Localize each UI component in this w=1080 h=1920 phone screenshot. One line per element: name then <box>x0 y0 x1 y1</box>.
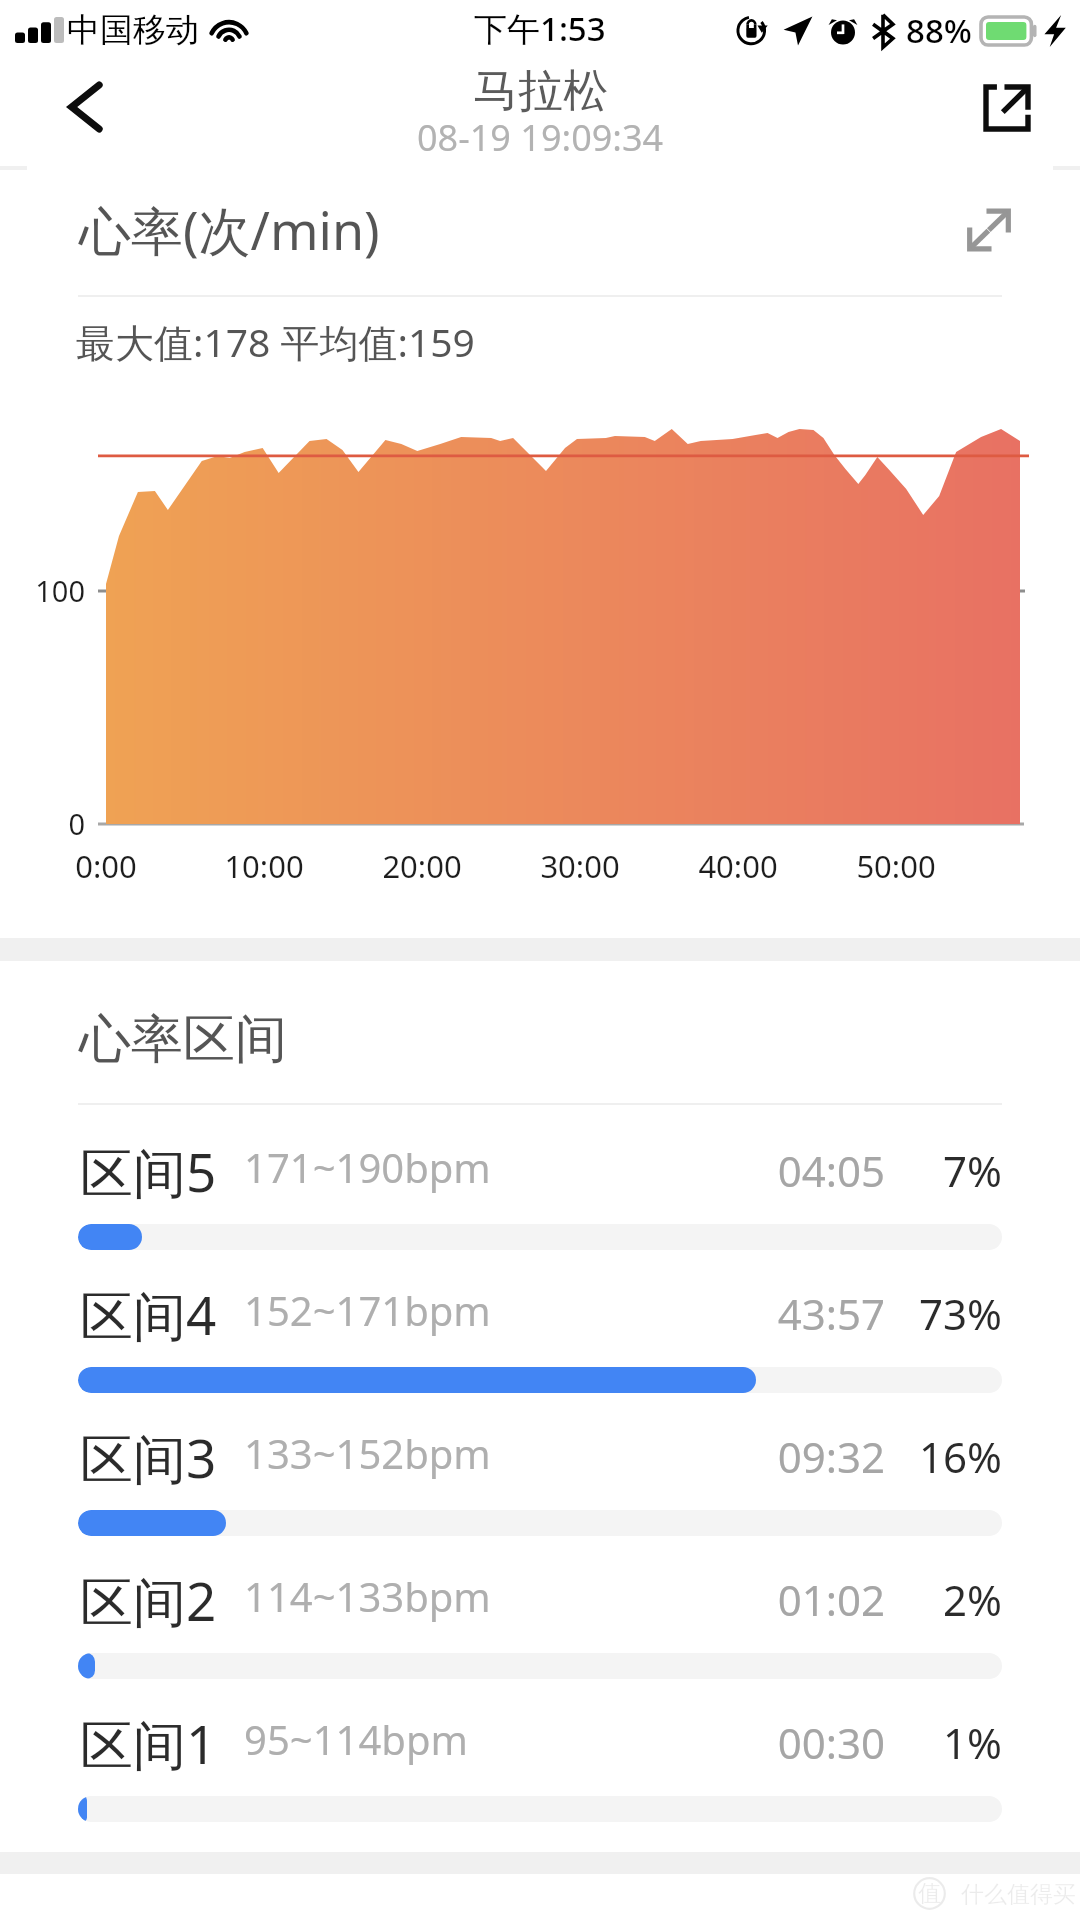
staticText: 0 <box>2 804 85 843</box>
button[interactable]: Back <box>0 60 150 160</box>
staticText: 下午1:53 <box>474 6 606 51</box>
staticText: 95~114bpm <box>244 1712 468 1766</box>
staticText: 区间2 <box>80 1564 217 1636</box>
staticText: 区间1 <box>80 1707 217 1779</box>
staticText: 什么值得买 <box>961 1880 1076 1909</box>
button[interactable]: 区间2 <box>0 1550 1080 1693</box>
staticText: 中国移动 <box>67 9 199 51</box>
staticText: 30:00 <box>510 845 650 887</box>
staticText: 0:00 <box>36 845 176 887</box>
staticText: 01:02 <box>700 1571 885 1628</box>
staticText: 2% <box>885 1571 1002 1628</box>
staticText: 16% <box>885 1428 1002 1485</box>
button[interactable]: Share <box>952 60 1064 160</box>
staticText: 10:00 <box>194 845 334 887</box>
staticText: 1% <box>885 1714 1002 1771</box>
staticText: 133~152bpm <box>244 1426 491 1480</box>
staticText: 114~133bpm <box>244 1569 491 1623</box>
staticText: 00:30 <box>700 1714 885 1771</box>
staticText: 最大值:178 平均值:159 <box>76 315 475 368</box>
staticText: 区间3 <box>80 1421 217 1493</box>
staticText: 152~171bpm <box>244 1283 491 1337</box>
staticText: 100 <box>2 571 85 610</box>
staticText: 50:00 <box>826 845 966 887</box>
button[interactable]: 区间4 <box>0 1264 1080 1407</box>
staticText: 心率区间 <box>79 1007 287 1073</box>
staticText: 值 <box>918 1879 941 1908</box>
staticText: 20:00 <box>352 845 492 887</box>
staticText: 7% <box>885 1142 1002 1199</box>
staticText: 171~190bpm <box>244 1140 491 1194</box>
staticText: 40:00 <box>668 845 808 887</box>
button[interactable]: 区间5 <box>0 1121 1080 1264</box>
staticText: 04:05 <box>700 1142 885 1199</box>
staticText: 73% <box>885 1285 1002 1342</box>
button[interactable]: 区间1 <box>0 1693 1080 1836</box>
button[interactable]: 区间3 <box>0 1407 1080 1550</box>
staticText: 区间4 <box>80 1278 217 1350</box>
staticText: 心率(次/min) <box>79 194 380 265</box>
staticText: 马拉松 <box>473 63 608 120</box>
staticText: 08-19 19:09:34 <box>417 113 664 162</box>
staticText: 88% <box>906 8 972 53</box>
button[interactable]: Expand chart <box>948 189 1030 271</box>
staticText: 43:57 <box>700 1285 885 1342</box>
staticText: 09:32 <box>700 1428 885 1485</box>
staticText: 区间5 <box>80 1135 217 1207</box>
